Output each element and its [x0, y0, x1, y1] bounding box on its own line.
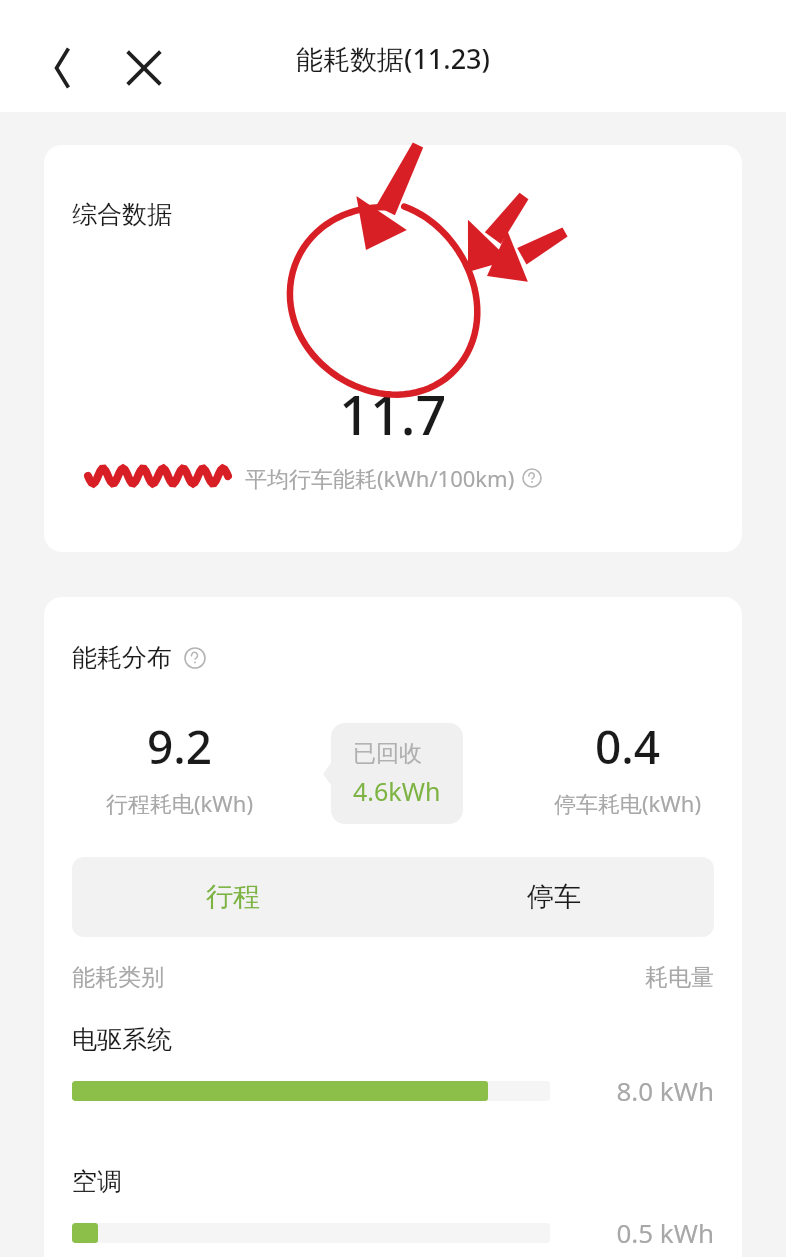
staticText: 空调 [72, 1166, 122, 1197]
staticText: 停车 [527, 880, 581, 914]
staticText: 能耗类别 [72, 963, 164, 992]
staticText: 停车耗电(kWh) [554, 788, 702, 818]
staticText: 0.5 kWh [576, 1215, 714, 1250]
staticText: 能耗分布 [72, 642, 172, 673]
staticText: 平均行车能耗(kWh/100km) [245, 463, 515, 493]
staticText: 4.6kWh [353, 774, 441, 808]
staticText: 11.7 [339, 377, 447, 451]
staticText: 已回收 [353, 739, 422, 768]
staticText: 能耗数据(11.23) [296, 40, 490, 77]
button[interactable]: 行程 [72, 857, 393, 937]
staticText: 综合数据 [72, 199, 172, 230]
staticText: 行程 [206, 880, 260, 914]
button[interactable]: Close [116, 40, 172, 96]
staticText: 耗电量 [645, 963, 714, 992]
staticText: 电驱系统 [72, 1024, 172, 1055]
staticText: 8.0 kWh [576, 1073, 714, 1108]
staticText: 0.4 [595, 715, 661, 778]
staticText: 9.2 [147, 715, 213, 778]
staticText: 行程耗电(kWh) [106, 788, 254, 818]
button[interactable]: Back [34, 40, 90, 96]
button[interactable]: 停车 [393, 857, 714, 937]
